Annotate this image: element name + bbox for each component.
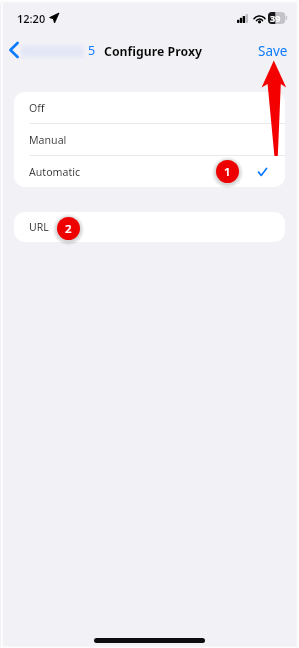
staticText: URL	[29, 220, 49, 234]
staticText: Off	[29, 101, 45, 115]
button[interactable]: URL	[14, 212, 285, 242]
staticText: Manual	[29, 133, 67, 147]
staticText: 39	[270, 12, 281, 24]
staticText: 2	[65, 221, 72, 237]
button[interactable]: Back	[6, 38, 94, 62]
staticText: 1	[224, 164, 231, 180]
staticText: 12:20	[17, 11, 46, 26]
button[interactable]: Save	[254, 40, 290, 62]
staticText: Save	[258, 42, 288, 60]
button[interactable]: Off	[14, 92, 285, 123]
staticText: Automatic	[29, 165, 81, 179]
staticText: Configure Proxy	[104, 43, 203, 60]
button[interactable]: Automatic	[14, 156, 285, 187]
button[interactable]: Manual	[14, 124, 285, 155]
staticText: 5	[88, 42, 96, 59]
